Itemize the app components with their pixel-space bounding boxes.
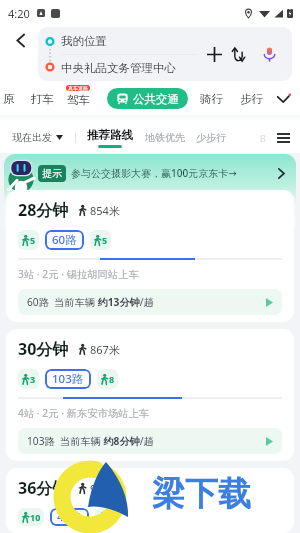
staticText: 我的位置: [61, 34, 107, 48]
staticText: 少步行: [196, 131, 226, 144]
button[interactable]: 推荐路线: [87, 128, 133, 148]
button[interactable]: 30分钟: [6, 329, 294, 461]
button[interactable]: 36分钟: [6, 468, 294, 533]
button[interactable]: Voice search: [251, 27, 287, 81]
staticText: 3站 · 2元 · 锡拉胡同站上车: [18, 267, 139, 281]
staticText: 中央礼品文务管理中心: [61, 61, 176, 75]
staticText: 驾车: [67, 93, 90, 107]
staticText: 30分钟: [18, 338, 69, 360]
button[interactable]: 60路 当前车辆 约13分钟/趟: [18, 289, 282, 315]
staticText: 60路 当前车辆 约13分钟/趟: [27, 295, 154, 309]
staticText: 10: [30, 511, 41, 523]
staticText: 36分钟: [18, 477, 69, 499]
button[interactable]: Back: [5, 28, 35, 80]
button[interactable]: 公共交通: [107, 88, 188, 109]
button[interactable]: 原: [0, 92, 19, 106]
staticText: 公共交通: [133, 92, 179, 106]
staticText: 28分钟: [18, 199, 69, 221]
button[interactable]: Add stop: [200, 27, 228, 81]
staticText: 地铁优先: [145, 131, 185, 144]
button[interactable]: Expand modes: [272, 87, 296, 111]
staticText: 60路: [52, 232, 77, 248]
button[interactable]: 提示: [4, 154, 296, 234]
staticText: 推荐路线: [87, 128, 133, 142]
staticText: 8: [109, 373, 115, 385]
staticText: 原: [3, 92, 15, 106]
staticText: 4:20: [8, 6, 30, 21]
button[interactable]: 步行: [240, 92, 263, 106]
button[interactable]: 骑行: [200, 92, 223, 106]
staticText: 5: [102, 234, 108, 246]
staticText: B: [260, 132, 266, 144]
staticText: 4站 · 2元 · 新东安市场站上车: [18, 406, 149, 420]
staticText: 3: [30, 373, 36, 385]
staticText: 912米: [90, 481, 120, 496]
staticText: 骑行: [200, 92, 223, 106]
staticText: 步行: [240, 92, 263, 106]
button[interactable]: 打车: [31, 92, 54, 106]
staticText: 提示: [42, 167, 62, 180]
button[interactable]: 少步行: [196, 131, 226, 144]
staticText: 真车道路: [68, 85, 88, 91]
staticText: 5: [30, 234, 36, 246]
staticText: 打车: [31, 92, 54, 106]
staticText: 梁下载: [152, 473, 251, 515]
button[interactable]: 28分钟: [6, 190, 294, 322]
button[interactable]: 地铁优先: [145, 131, 185, 144]
button[interactable]: Route options: [272, 127, 294, 149]
staticText: 103路: [52, 371, 84, 387]
staticText: 867米: [90, 342, 120, 357]
button[interactable]: 驾车: [67, 90, 90, 107]
staticText: 参与公交摄影大赛，赢100元京东卡→: [71, 166, 237, 180]
staticText: 854米: [90, 203, 120, 218]
staticText: 现在出发: [12, 131, 52, 144]
button[interactable]: 现在出发: [12, 131, 63, 144]
button[interactable]: Swap start and destination: [223, 27, 253, 81]
button[interactable]: 103路 当前车辆 约8分钟/趟: [18, 428, 282, 454]
staticText: 41路: [57, 509, 82, 525]
staticText: 103路 当前车辆 约8分钟/趟: [27, 434, 154, 448]
